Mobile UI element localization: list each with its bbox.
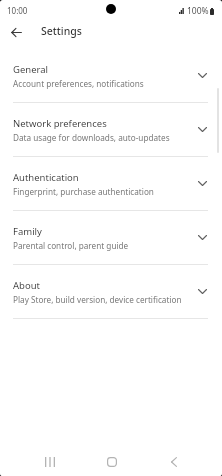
staticText: 10:00 [7, 5, 28, 16]
staticText: Settings [41, 24, 82, 38]
button[interactable]: Family [0, 211, 222, 264]
staticText: Parental control, parent guide [13, 240, 129, 251]
button[interactable]: About [0, 265, 222, 318]
staticText: Data usage for downloads, auto-updates [13, 132, 170, 143]
button[interactable]: Recent apps [28, 445, 72, 476]
staticText: Fingerprint, purchase authentication [13, 186, 154, 197]
staticText: Authentication [13, 171, 79, 184]
staticText: Play Store, build version, device certif… [13, 294, 182, 305]
staticText: About [13, 279, 40, 292]
button[interactable]: Authentication [0, 157, 222, 210]
button[interactable]: Home [90, 445, 134, 476]
staticText: 100% [187, 5, 209, 17]
staticText: General [13, 63, 49, 76]
button[interactable]: Navigate up [4, 20, 28, 44]
staticText: Family [13, 225, 42, 238]
staticText: Network preferences [13, 117, 107, 130]
button[interactable]: General [0, 49, 222, 102]
button[interactable]: Network preferences [0, 103, 222, 156]
button[interactable]: Back [152, 445, 196, 476]
staticText: Account preferences, notifications [13, 78, 144, 89]
